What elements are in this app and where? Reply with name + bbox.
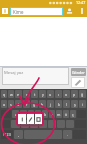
button[interactable]: Key xyxy=(27,114,34,124)
staticText: s xyxy=(10,102,12,107)
button[interactable]: m xyxy=(56,110,62,118)
button[interactable]: Gönder xyxy=(71,68,86,76)
staticText: i xyxy=(82,102,83,107)
staticText: v xyxy=(37,112,39,117)
staticText: ö xyxy=(65,112,68,117)
staticText: a xyxy=(3,102,6,107)
button[interactable]: n xyxy=(49,110,55,118)
button[interactable]: r xyxy=(23,90,30,98)
staticText: Kime xyxy=(13,9,24,15)
button[interactable]: Kime xyxy=(11,8,62,15)
button[interactable]: t xyxy=(31,90,38,98)
button[interactable]: Key xyxy=(35,114,42,124)
button[interactable]: z xyxy=(12,110,19,118)
button[interactable]: o xyxy=(63,90,70,98)
staticText: p xyxy=(73,92,76,97)
staticText: l xyxy=(66,102,67,107)
button[interactable]: k xyxy=(55,100,62,108)
button[interactable]: x xyxy=(20,110,27,118)
button[interactable] xyxy=(1,120,10,128)
staticText: w xyxy=(10,92,13,97)
button[interactable] xyxy=(30,120,38,128)
staticText: x xyxy=(23,112,25,117)
staticText: ç xyxy=(72,112,74,117)
staticText: t xyxy=(34,92,36,97)
button[interactable]: Key xyxy=(18,114,26,124)
button[interactable]: c xyxy=(28,110,34,118)
staticText: Mesaj yaz xyxy=(4,70,24,76)
staticText: m xyxy=(57,112,61,117)
button[interactable]: a xyxy=(1,100,7,108)
button[interactable]: y xyxy=(39,90,46,98)
staticText: u xyxy=(49,92,52,97)
staticText: f xyxy=(26,102,28,107)
staticText: k xyxy=(58,102,60,107)
button[interactable]: ?123 xyxy=(1,130,13,139)
button[interactable]: ş xyxy=(71,100,78,108)
button[interactable]: v xyxy=(35,110,41,118)
staticText: r xyxy=(26,92,28,97)
button[interactable] xyxy=(21,120,29,128)
staticText: . xyxy=(67,132,68,137)
button[interactable]: ğ xyxy=(79,90,86,98)
button[interactable]: w xyxy=(8,90,14,98)
button[interactable] xyxy=(48,120,56,128)
button[interactable]: More options xyxy=(76,5,87,17)
button[interactable]: Back xyxy=(0,5,10,17)
button[interactable]: s xyxy=(8,100,14,108)
button[interactable] xyxy=(1,110,11,118)
staticText: , xyxy=(18,132,19,137)
staticText: g xyxy=(33,102,36,107)
staticText: h xyxy=(41,102,44,107)
staticText: y xyxy=(42,92,44,97)
button[interactable]: ç xyxy=(70,110,76,118)
button[interactable]: g xyxy=(31,100,38,108)
button[interactable]: i xyxy=(79,100,86,108)
staticText: j xyxy=(50,102,51,107)
button[interactable]: q xyxy=(1,90,7,98)
button[interactable]: h xyxy=(39,100,46,108)
staticText: Gönder xyxy=(72,70,85,75)
button[interactable] xyxy=(24,130,62,139)
button[interactable]: d xyxy=(15,100,22,108)
staticText: ş xyxy=(74,102,76,107)
button[interactable]: b xyxy=(42,110,48,118)
button[interactable]: Mesaj yaz xyxy=(2,67,69,85)
staticText: n xyxy=(51,112,54,117)
staticText: o xyxy=(65,92,68,97)
button[interactable]: Edit xyxy=(71,77,85,88)
button[interactable]: Add recipient xyxy=(63,5,76,17)
button[interactable]: , xyxy=(14,130,23,139)
staticText: q xyxy=(3,92,6,97)
button[interactable]: e xyxy=(15,90,22,98)
staticText: d xyxy=(17,102,20,107)
button[interactable]: j xyxy=(47,100,54,108)
button[interactable]: l xyxy=(63,100,70,108)
button[interactable]: p xyxy=(71,90,78,98)
button[interactable]: u xyxy=(47,90,54,98)
button[interactable] xyxy=(11,120,20,128)
staticText: z xyxy=(15,112,17,117)
staticText: ?123 xyxy=(3,132,11,137)
staticText: e xyxy=(17,92,20,97)
button[interactable] xyxy=(39,120,47,128)
staticText: b xyxy=(44,112,47,117)
staticText: ı xyxy=(58,92,59,97)
staticText: 12:47 xyxy=(76,0,86,5)
button[interactable]: . xyxy=(63,130,72,139)
staticText: c xyxy=(30,112,32,117)
staticText: ğ xyxy=(81,92,84,97)
button[interactable]: f xyxy=(23,100,30,108)
button[interactable]: ı xyxy=(55,90,62,98)
button[interactable]: ö xyxy=(63,110,69,118)
